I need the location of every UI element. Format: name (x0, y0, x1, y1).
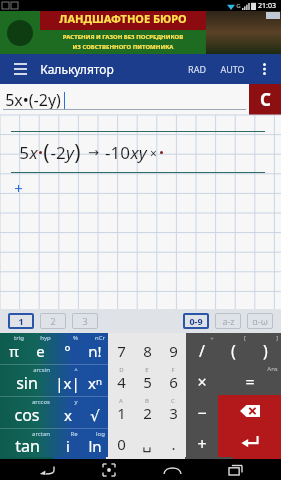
button[interactable]: C (160, 395, 186, 426)
button[interactable]: hyp (27, 333, 54, 364)
button[interactable]: trig (0, 333, 27, 364)
button[interactable]: % (54, 333, 81, 364)
staticText: ( (231, 340, 236, 362)
button[interactable]: F (160, 364, 186, 395)
staticText: Калькулятор (40, 61, 114, 77)
button[interactable]: × (186, 364, 218, 395)
staticText: ( (43, 138, 50, 167)
button[interactable]: arctan (0, 429, 54, 457)
staticText: [ (244, 334, 246, 342)
staticText: → (88, 145, 99, 160)
staticText: 3 (82, 315, 88, 327)
button[interactable]: 0-9 (183, 313, 209, 329)
button[interactable]: ÷ (186, 333, 217, 364)
button[interactable]: ^ (54, 365, 81, 396)
button[interactable]: 9 (160, 333, 186, 364)
staticText: B (145, 397, 149, 405)
button[interactable]: RAD (184, 57, 210, 81)
staticText: xⁿ (88, 373, 102, 393)
staticText: ␣ (142, 435, 152, 452)
button[interactable]: log (81, 429, 108, 457)
staticText: ) (74, 138, 81, 167)
button[interactable]: 7 (108, 333, 134, 364)
button[interactable]: arccos (0, 397, 54, 428)
staticText: nCr (95, 334, 105, 342)
button[interactable]: 3 (72, 313, 98, 329)
button[interactable]: C (249, 84, 281, 115)
staticText: 0-9 (189, 315, 203, 327)
staticText: × (197, 371, 207, 393)
staticText: 5 (19, 141, 29, 164)
button[interactable]: − (186, 395, 218, 426)
staticText: C (171, 397, 175, 405)
staticText: Re (70, 430, 78, 438)
button[interactable]: ] (249, 333, 281, 364)
button[interactable]: Enter (218, 426, 281, 457)
staticText: ] (276, 334, 278, 342)
staticText: n! (88, 341, 102, 361)
button[interactable]: A (108, 395, 134, 426)
button[interactable]: Menu (8, 57, 32, 81)
staticText: xy (130, 141, 147, 164)
button[interactable]: α-ω (247, 313, 273, 329)
staticText: 0 (117, 434, 126, 454)
staticText: RAD (188, 63, 206, 75)
staticText: ° (64, 341, 71, 361)
button[interactable]: Backspace (218, 395, 281, 426)
staticText: arctan (32, 430, 50, 438)
staticText: 9 (169, 341, 178, 361)
button[interactable]: AUTO (216, 57, 249, 81)
button[interactable]: 0 (108, 426, 134, 457)
staticText: e (36, 341, 45, 361)
button[interactable]: nCr (81, 333, 108, 364)
staticText: α-ω (252, 315, 268, 327)
staticText: × (150, 145, 157, 161)
button[interactable]: xⁿ (81, 365, 108, 396)
button[interactable]: . (160, 426, 186, 457)
button[interactable]: Ans (218, 364, 281, 395)
button[interactable]: y (54, 397, 81, 428)
staticText: x (29, 141, 38, 164)
staticText: hyp (40, 334, 51, 342)
staticText: E (145, 366, 149, 374)
button[interactable]: Recent apps (218, 459, 252, 480)
button[interactable]: arcsin (0, 365, 54, 396)
staticText: 5x•(-2y) (5, 89, 61, 111)
button[interactable]: 8 (134, 333, 160, 364)
staticText: A (119, 397, 123, 405)
button[interactable]: 1 (8, 313, 34, 329)
button[interactable]: [ (217, 333, 249, 364)
button[interactable]: Re (54, 429, 81, 457)
staticText: . (171, 434, 176, 454)
staticText: 4 (117, 372, 126, 392)
button[interactable]: More options (255, 60, 273, 78)
button[interactable]: E (134, 364, 160, 395)
staticText: ЛАНДШАФТНОЕ БЮРО ECOPLANT (40, 11, 206, 30)
button[interactable]: B (134, 395, 160, 426)
staticText: AUTO (220, 63, 245, 75)
button[interactable]: a-z (215, 313, 241, 329)
staticText: trig (14, 334, 24, 342)
button[interactable]: ␣ (134, 426, 160, 457)
button[interactable]: Back (29, 459, 63, 480)
staticText: -10 (105, 141, 130, 164)
button[interactable]: 2 (40, 313, 66, 329)
staticText: C (260, 88, 271, 111)
staticText: 8 (143, 341, 152, 361)
staticText: a-z (222, 315, 235, 327)
button[interactable]: + (186, 426, 218, 457)
staticText: |x| (55, 373, 80, 393)
button[interactable]: D (108, 364, 134, 395)
staticText: ) (263, 340, 268, 362)
button[interactable]: Screenshot (92, 459, 126, 480)
staticText: − (197, 402, 207, 424)
staticText: F (171, 366, 175, 374)
staticText: 2 (143, 403, 152, 423)
staticText: 1 (117, 403, 126, 423)
staticText: ln (88, 436, 102, 456)
staticText: tan (15, 435, 40, 457)
staticText: РАСТЕНИЯ И ГАЗОН БЕЗ ПОСРЕДНИКОВ (40, 33, 206, 41)
button[interactable]: Home (155, 459, 189, 480)
staticText: / (199, 340, 205, 362)
button[interactable]: √ (81, 397, 108, 428)
